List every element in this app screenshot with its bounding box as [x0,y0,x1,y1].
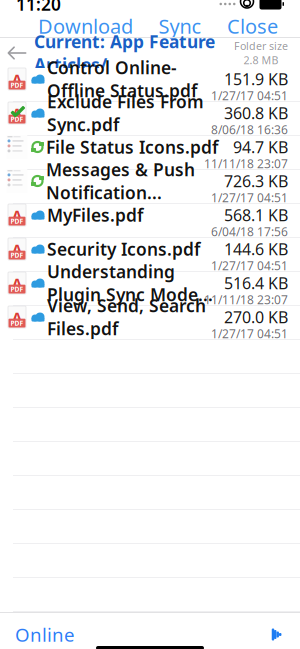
staticText: 94.7 KB [233,136,288,158]
staticText: Download [38,13,133,39]
button[interactable]: A [0,272,300,306]
button[interactable]: Back [0,38,34,68]
staticText: Exclude Files From Sync.pdf [47,90,204,136]
staticText: A [12,205,22,225]
button[interactable]: A [0,102,300,136]
staticText: 516.4 KB [224,272,288,294]
staticText: 726.3 KB [224,170,288,192]
button[interactable]: Online [9,618,81,649]
staticText: 11/11/18 23:07 [204,155,288,171]
button[interactable]: A [0,68,300,102]
staticText: PDF [10,115,23,123]
staticText: 1/27/17 04:51 [211,257,288,273]
staticText: 270.0 KB [224,306,288,328]
button[interactable]: File Status Icons.pdf [0,136,300,170]
staticText: 1/27/17 04:51 [211,325,288,341]
staticText: File Status Icons.pdf [46,135,218,158]
button[interactable]: Sync [150,10,209,42]
staticText: 1/27/17 04:51 [211,189,288,205]
staticText: A [12,239,22,259]
staticText: MyFiles.pdf [47,203,143,226]
staticText: Close [227,13,278,39]
staticText: Sync [158,13,201,39]
staticText: 2.8 MB [243,53,278,67]
staticText: Current: App Feature Articles/ [34,30,215,76]
staticText: PDF [10,319,23,327]
staticText: PDF [10,217,23,225]
staticText: Control Online-Offline Status.pdf [47,56,197,102]
staticText: A [12,69,22,89]
button[interactable]: A [0,238,300,272]
staticText: 144.6 KB [224,238,288,260]
button[interactable]: Close [219,10,286,42]
staticText: 151.9 KB [224,68,288,90]
staticText: Understanding Plugin Sync Mode... [47,260,213,306]
staticText: PDF [10,81,23,89]
staticText: Security Icons.pdf [47,237,200,260]
staticText: View, Send, Search Files.pdf [47,294,206,340]
staticText: 568.1 KB [224,204,288,226]
button[interactable]: A [0,306,300,340]
button[interactable]: Messages & Push Notification... [0,170,300,204]
staticText: 11:20 [16,0,61,15]
staticText: PDF [10,285,23,293]
button[interactable]: Download [30,10,141,42]
staticText: 360.8 KB [224,102,288,124]
staticText: A [12,307,22,327]
staticText: 1/27/17 04:51 [211,87,288,103]
staticText: A [12,273,22,293]
button[interactable]: Play [264,623,290,645]
staticText: Folder size [234,39,288,53]
staticText: PDF [10,251,23,259]
staticText: Messages & Push Notification... [46,158,195,204]
staticText: 6/04/18 17:56 [211,223,288,239]
staticText: 8/06/18 16:36 [211,121,288,137]
staticText: Online [15,622,75,647]
staticText: A [12,103,22,123]
staticText: 11/11/18 23:07 [204,291,288,307]
button[interactable]: A [0,204,300,238]
